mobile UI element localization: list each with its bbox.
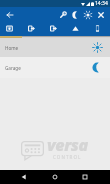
button[interactable]: Close [94,8,107,21]
button[interactable]: Home [48,170,62,184]
button[interactable]: Garage [0,57,110,78]
staticText: CONTROL [53,154,82,160]
button[interactable]: Back [17,170,31,184]
button[interactable]: Recent apps [78,170,92,184]
button[interactable]: Device [86,21,108,36]
button[interactable]: Zone 2 [42,21,64,36]
staticText: versa [47,134,88,156]
button[interactable]: Day mode [81,8,94,21]
staticText: Home [5,45,19,51]
button[interactable]: Back [3,8,16,21]
button[interactable]: Tools [56,8,69,21]
staticText: 14:34 [95,0,108,7]
staticText: Garage [5,65,21,71]
button[interactable]: Home [0,38,110,57]
button[interactable]: Zone 1 [20,21,42,36]
button[interactable]: Display [0,21,20,36]
button[interactable]: Night mode [69,8,82,21]
button[interactable]: Alerts [64,21,86,36]
